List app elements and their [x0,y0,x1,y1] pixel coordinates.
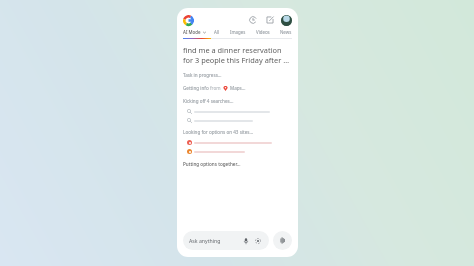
button[interactable] [187,109,292,114]
button[interactable] [187,149,292,154]
button[interactable]: All [214,29,220,35]
staticText: Maps... [230,85,246,91]
button[interactable]: Live voice [273,231,292,250]
staticText: Getting info [183,85,210,91]
button[interactable]: Videos [256,29,270,35]
staticText: find me a dinner reservation for 3 peopl… [183,45,292,65]
button[interactable]: Images [230,29,246,35]
staticText: Task in progress... [183,72,292,78]
staticText: Kicking off 4 searches... [183,98,292,104]
button[interactable]: Voice search [241,236,251,246]
button[interactable]: Account [281,15,292,26]
button[interactable] [187,140,292,145]
staticText: Ask anything [189,237,221,244]
button[interactable] [187,118,292,123]
button[interactable]: History [247,14,259,26]
button[interactable]: Google [183,15,194,26]
button[interactable]: AI Mode [183,29,206,35]
button[interactable]: News [280,29,292,35]
staticText: Looking for options on 43 sites... [183,129,292,135]
staticText: AI Mode [183,29,201,35]
button[interactable]: New chat [264,14,276,26]
staticText: Putting options together... [183,161,241,167]
button[interactable]: Ask anything [183,231,269,250]
staticText: from [210,85,222,91]
button[interactable]: Google Lens [253,236,263,246]
